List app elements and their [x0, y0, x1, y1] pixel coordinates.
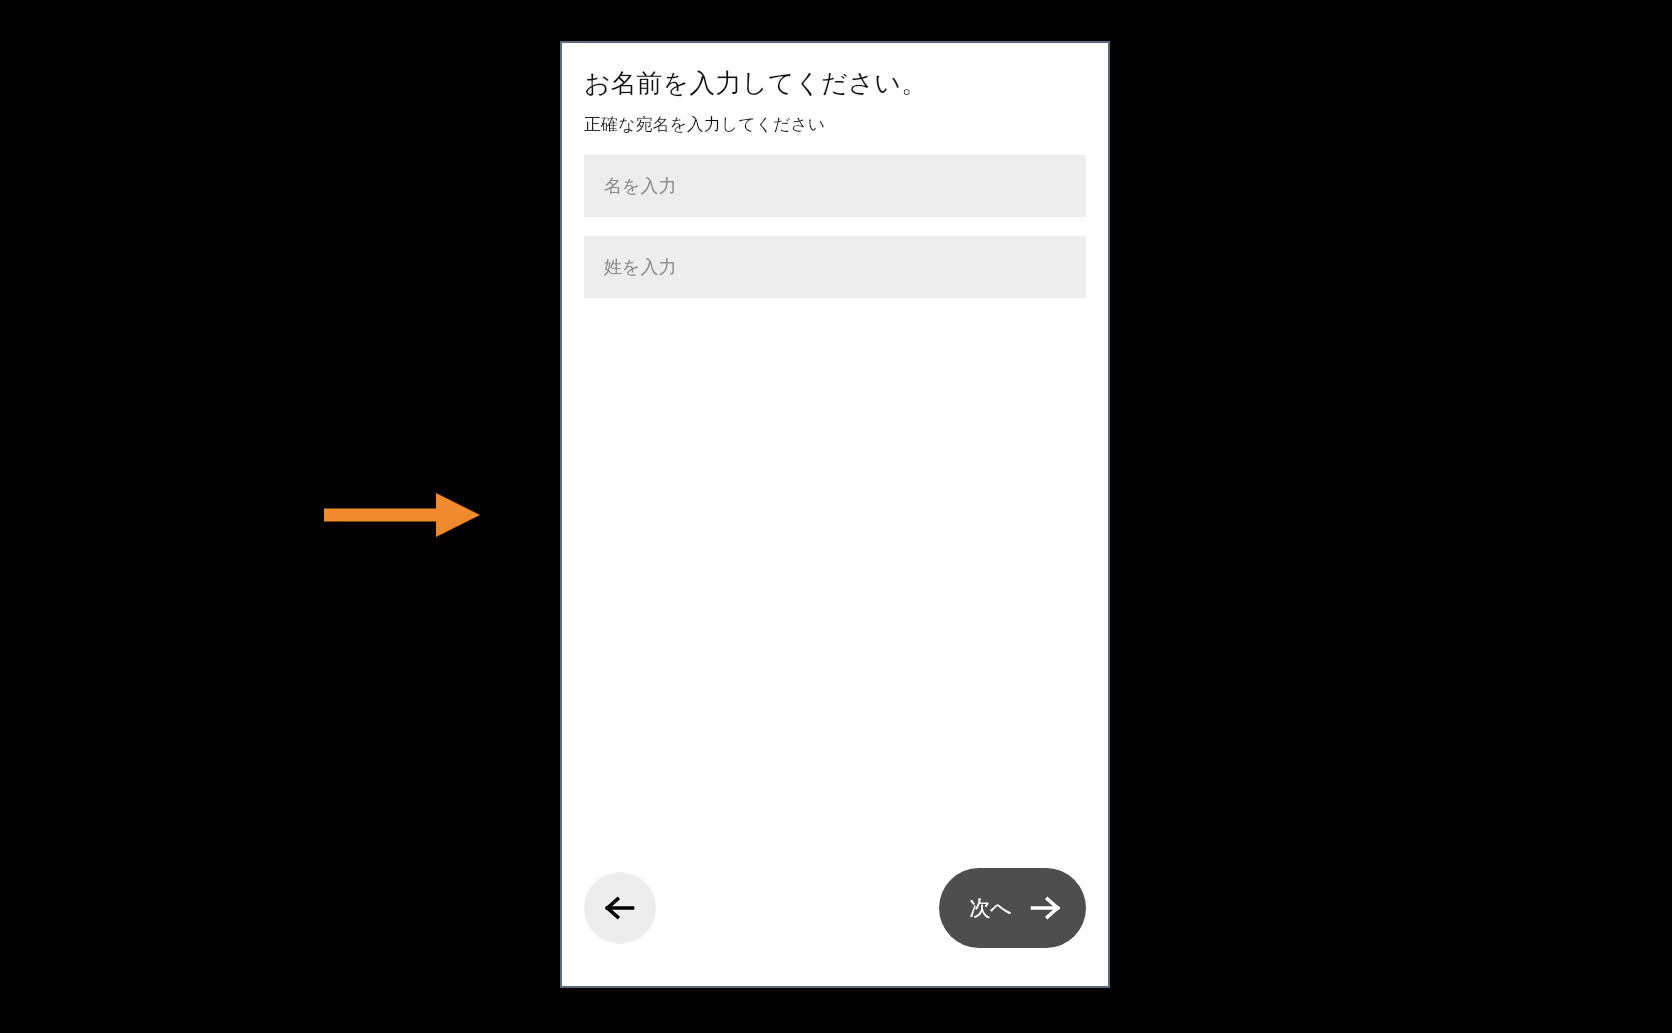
button[interactable]: 戻る [584, 872, 656, 944]
staticText: 名を入力 [604, 175, 677, 198]
staticText: 正確な宛名を入力してください [584, 114, 826, 135]
staticText: 次へ [969, 895, 1012, 921]
button[interactable]: 名を入力 [584, 155, 1086, 217]
button[interactable]: 姓を入力 [584, 236, 1086, 298]
button[interactable]: 次へ [939, 868, 1086, 948]
staticText: お名前を入力してください。 [584, 67, 927, 100]
staticText: 姓を入力 [604, 256, 677, 279]
